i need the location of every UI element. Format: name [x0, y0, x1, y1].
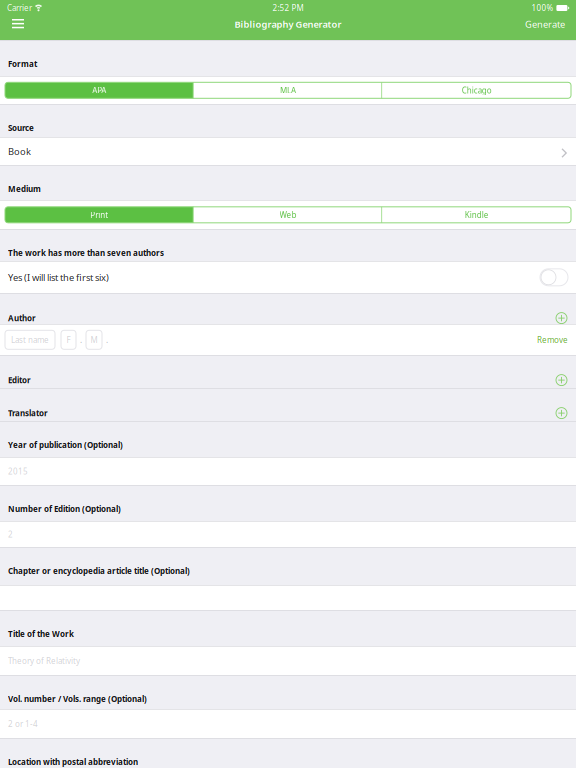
- button[interactable]: Chicago: [382, 82, 571, 98]
- staticText: Editor: [8, 375, 31, 385]
- staticText: 100%: [531, 3, 553, 13]
- button[interactable]: Generate: [525, 16, 576, 40]
- staticText: F: [66, 334, 70, 345]
- staticText: 2015: [8, 466, 28, 477]
- button[interactable]: Add Editor: [555, 374, 568, 387]
- staticText: .: [80, 334, 82, 345]
- staticText: Source: [8, 123, 34, 133]
- staticText: Chicago: [462, 85, 492, 96]
- staticText: APA: [92, 85, 106, 96]
- staticText: Carrier: [7, 3, 32, 13]
- staticText: Translator: [8, 408, 48, 418]
- button[interactable]: Add Translator: [555, 407, 568, 420]
- staticText: 2: [8, 529, 13, 540]
- staticText: Web: [279, 209, 296, 220]
- staticText: Bibliography Generator: [234, 18, 341, 30]
- staticText: Book: [8, 145, 31, 157]
- button[interactable]: Yes (I will list the first six): [540, 269, 568, 286]
- staticText: Year of publication (Optional): [8, 440, 123, 450]
- button[interactable]: APA: [5, 82, 194, 98]
- button[interactable]: Print: [5, 207, 194, 223]
- button[interactable]: Kindle: [382, 207, 571, 223]
- staticText: 2:52 PM: [272, 3, 303, 13]
- staticText: .: [106, 334, 108, 345]
- staticText: Author: [8, 313, 36, 323]
- staticText: Chapter or encyclopedia article title (O…: [8, 566, 190, 576]
- staticText: Location with postal abbreviation: [8, 757, 138, 767]
- staticText: Generate: [525, 18, 565, 30]
- button[interactable]: MLA: [194, 82, 382, 98]
- staticText: Remove: [537, 334, 568, 345]
- staticText: 2 or 1-4: [8, 718, 38, 729]
- staticText: Number of Edition (Optional): [8, 504, 121, 514]
- staticText: Vol. number / Vols. range (Optional): [8, 694, 147, 704]
- staticText: M: [90, 334, 97, 345]
- button[interactable]: Add Author: [555, 312, 568, 325]
- staticText: Medium: [8, 184, 41, 194]
- staticText: MLA: [280, 85, 296, 96]
- button[interactable]: Menu: [6, 16, 30, 40]
- staticText: Title of the Work: [8, 629, 74, 639]
- staticText: The work has more than seven authors: [8, 248, 164, 258]
- button[interactable]: Book: [0, 137, 576, 165]
- staticText: Last name: [11, 334, 49, 345]
- staticText: Format: [8, 59, 37, 69]
- button[interactable]: Remove: [537, 334, 568, 345]
- staticText: Yes (I will list the first six): [8, 271, 109, 283]
- staticText: Kindle: [465, 209, 489, 220]
- staticText: Theory of Relativity: [8, 655, 80, 666]
- button[interactable]: Web: [194, 207, 382, 223]
- staticText: Print: [90, 209, 108, 220]
